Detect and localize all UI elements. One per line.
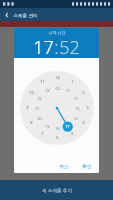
staticText: 확인 <box>82 163 92 169</box>
staticText: 00 <box>55 86 60 91</box>
staticText: 취소 <box>59 163 69 169</box>
staticText: 스케줄 관리 <box>13 12 38 18</box>
staticText: 시작 시간 <box>48 30 66 35</box>
staticText: 9 <box>26 105 29 111</box>
staticText: 17 <box>33 35 54 58</box>
staticText: 17 <box>65 124 70 129</box>
staticText: 4 <box>82 120 85 126</box>
button[interactable]: 52 <box>59 35 80 58</box>
staticText: 16 <box>73 116 78 121</box>
button[interactable]: Back <box>0 8 13 21</box>
staticText: 7 <box>41 131 44 137</box>
staticText: 23 <box>45 88 50 93</box>
staticText: 11 <box>40 79 45 85</box>
staticText: 19 <box>45 124 50 129</box>
staticText: 1 <box>71 79 74 85</box>
staticText: 8 <box>30 120 33 126</box>
button[interactable]: 취소 <box>55 161 73 171</box>
staticText: 21 <box>35 106 40 111</box>
button[interactable]: 17 <box>33 35 54 58</box>
staticText: 13 <box>65 88 70 93</box>
staticText: 15 <box>75 106 80 111</box>
staticText: 12 <box>55 75 60 81</box>
staticText: 14 <box>73 96 78 101</box>
staticText: 새 스케줄 추가 <box>42 187 72 193</box>
staticText: 52 <box>59 35 80 58</box>
staticText: 5 <box>71 131 74 137</box>
staticText: 20 <box>37 116 42 121</box>
staticText: 3 <box>86 105 89 111</box>
staticText: 10 <box>29 90 34 96</box>
button[interactable]: 확인 <box>78 161 96 171</box>
staticText: 2 <box>82 90 85 96</box>
staticText: : <box>54 35 59 58</box>
staticText: 22 <box>37 96 42 101</box>
staticText: 18 <box>55 126 60 131</box>
button[interactable]: Hour picker clock face <box>20 71 94 145</box>
staticText: 6 <box>56 135 59 141</box>
button[interactable]: 새 스케줄 추가 <box>0 180 113 200</box>
